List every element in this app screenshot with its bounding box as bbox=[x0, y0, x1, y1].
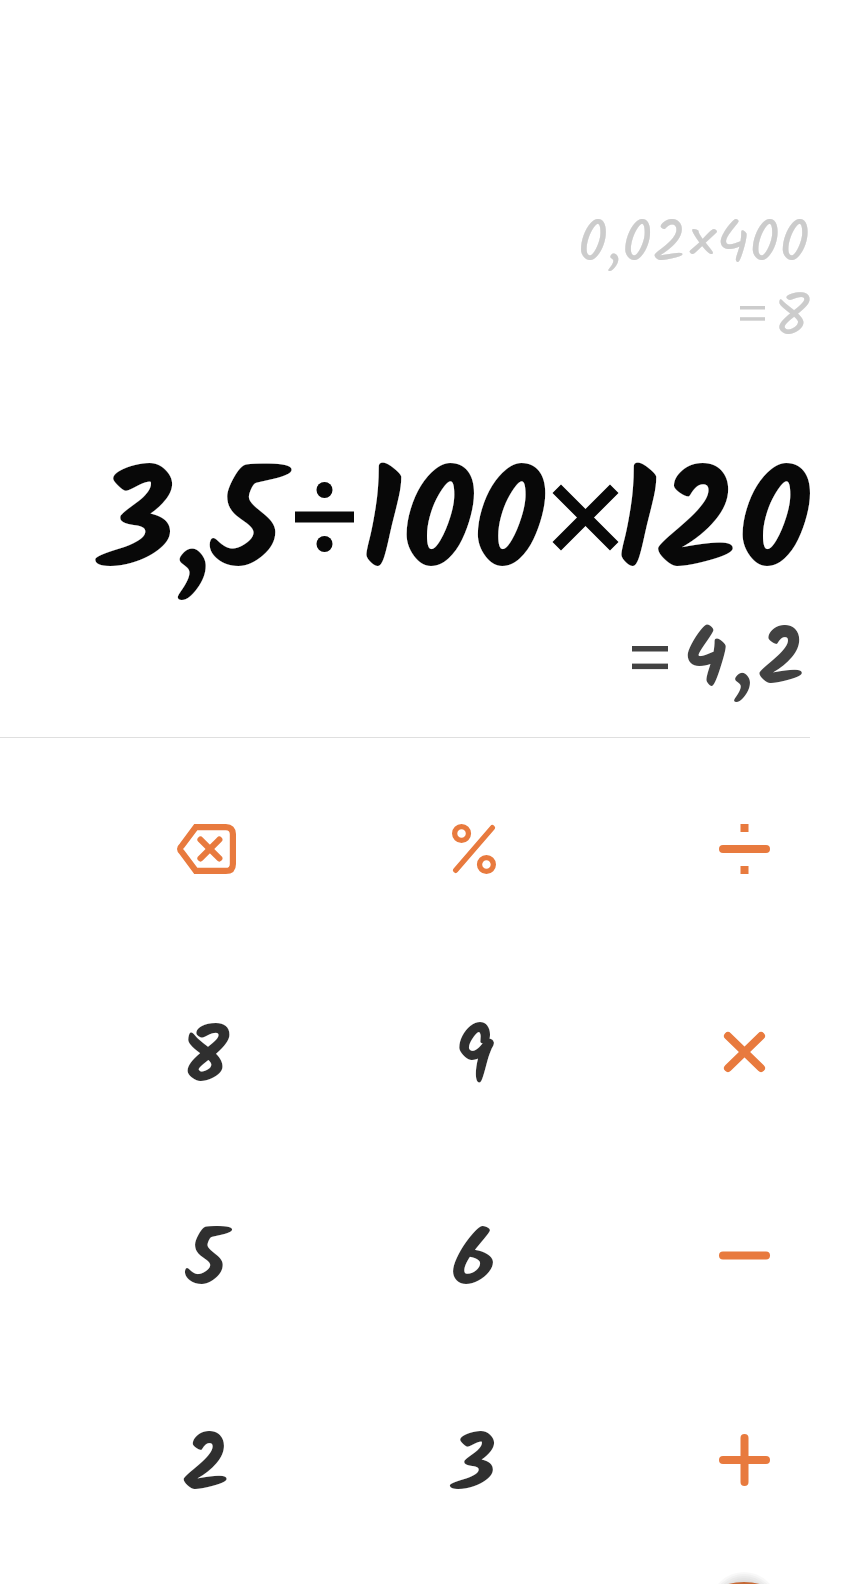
button[interactable]: Add bbox=[654, 1370, 834, 1550]
staticText: 3 bbox=[452, 1405, 496, 1533]
staticText: 3,5 bbox=[99, 420, 282, 642]
button[interactable]: 9 bbox=[384, 962, 564, 1142]
staticText: 120 bbox=[615, 420, 810, 642]
staticText: 8 bbox=[774, 272, 810, 366]
staticText: 5 bbox=[186, 1200, 227, 1328]
staticText: 2 bbox=[183, 1405, 230, 1533]
button[interactable]: 8 bbox=[116, 962, 296, 1142]
button[interactable]: Divide bbox=[654, 759, 834, 939]
button[interactable]: 6 bbox=[384, 1165, 564, 1345]
button[interactable]: Backspace bbox=[116, 759, 296, 939]
staticText: 100 bbox=[360, 420, 545, 642]
staticText: 9 bbox=[454, 997, 495, 1125]
staticText: 8 bbox=[182, 997, 230, 1125]
button[interactable]: 2 bbox=[116, 1370, 296, 1550]
staticText: 0,02×400 bbox=[578, 198, 810, 292]
button[interactable]: Subtract bbox=[654, 1165, 834, 1345]
staticText: 4,2 bbox=[684, 600, 811, 726]
button[interactable]: Percent bbox=[384, 759, 564, 939]
staticText: 6 bbox=[452, 1200, 496, 1328]
button[interactable]: 3 bbox=[384, 1370, 564, 1550]
button[interactable]: Equals bbox=[682, 1582, 806, 1584]
button[interactable]: 5 bbox=[116, 1165, 296, 1345]
button[interactable]: Multiply bbox=[654, 962, 834, 1142]
